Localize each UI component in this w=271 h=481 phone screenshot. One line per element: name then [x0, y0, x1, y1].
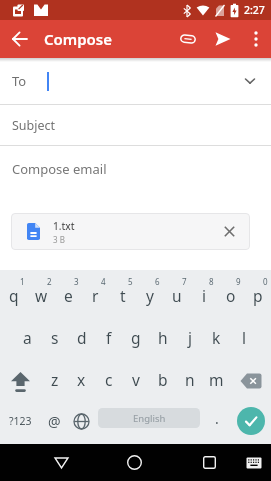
staticText: @: [48, 412, 61, 431]
button[interactable]: h: [149, 318, 176, 360]
staticText: l: [242, 327, 246, 348]
button[interactable]: x: [68, 360, 95, 402]
button[interactable]: 2: [28, 276, 55, 318]
staticText: j: [188, 327, 192, 348]
staticText: Compose email: [12, 160, 107, 178]
button[interactable]: l: [230, 318, 257, 360]
button[interactable]: [230, 360, 271, 402]
button[interactable]: v: [122, 360, 149, 402]
staticText: t: [120, 285, 126, 306]
button[interactable]: @: [41, 402, 68, 444]
button[interactable]: b: [149, 360, 176, 402]
staticText: h: [158, 327, 168, 348]
staticText: r: [92, 285, 99, 306]
button[interactable]: [237, 444, 271, 481]
staticText: To: [12, 72, 27, 90]
staticText: s: [51, 327, 59, 348]
button[interactable]: To: [0, 58, 271, 104]
button[interactable]: m: [203, 360, 230, 402]
staticText: 0: [263, 276, 268, 287]
button[interactable]: .: [203, 402, 230, 444]
staticText: y: [146, 285, 154, 306]
button[interactable]: 7: [163, 276, 190, 318]
staticText: a: [23, 327, 32, 348]
staticText: 7: [182, 276, 187, 287]
staticText: 1: [20, 276, 25, 287]
staticText: u: [172, 285, 182, 306]
button[interactable]: 9: [217, 276, 244, 318]
staticText: 3: [74, 276, 79, 287]
staticText: 8: [209, 276, 214, 287]
button[interactable]: [205, 20, 241, 58]
staticText: 5: [128, 276, 133, 287]
button[interactable]: [189, 444, 229, 481]
staticText: o: [226, 285, 236, 306]
staticText: Subject: [12, 117, 56, 134]
button[interactable]: [0, 360, 41, 402]
button[interactable]: 0: [244, 276, 271, 318]
button[interactable]: English: [95, 402, 203, 444]
button[interactable]: Subject: [0, 105, 271, 145]
staticText: p: [253, 285, 263, 306]
staticText: d: [77, 327, 87, 348]
staticText: 3 B: [53, 234, 65, 245]
button[interactable]: [68, 402, 95, 444]
button[interactable]: c: [95, 360, 122, 402]
button[interactable]: 1.txt: [11, 213, 250, 250]
staticText: .: [215, 409, 219, 428]
button[interactable]: 1: [0, 276, 28, 318]
button[interactable]: [171, 20, 205, 58]
button[interactable]: f: [95, 318, 122, 360]
button[interactable]: [114, 444, 154, 481]
button[interactable]: ?123: [0, 402, 41, 444]
staticText: 9: [236, 276, 241, 287]
staticText: 4: [101, 276, 106, 287]
button[interactable]: [230, 402, 271, 444]
button[interactable]: [214, 213, 244, 250]
staticText: q: [9, 285, 19, 306]
staticText: Compose: [44, 29, 113, 49]
staticText: m: [209, 369, 224, 390]
staticText: w: [35, 285, 48, 306]
staticText: g: [131, 327, 141, 348]
staticText: English: [133, 412, 166, 425]
button[interactable]: [241, 20, 271, 58]
button[interactable]: j: [176, 318, 203, 360]
button[interactable]: s: [41, 318, 68, 360]
button[interactable]: g: [122, 318, 149, 360]
staticText: 1.txt: [53, 219, 75, 233]
staticText: 2: [47, 276, 52, 287]
staticText: b: [158, 369, 168, 390]
staticText: 2:27: [244, 3, 265, 17]
button[interactable]: z: [41, 360, 68, 402]
staticText: ?123: [9, 414, 32, 428]
button[interactable]: k: [203, 318, 230, 360]
button[interactable]: Compose email: [0, 146, 271, 192]
button[interactable]: [0, 20, 40, 58]
staticText: 6: [155, 276, 160, 287]
staticText: x: [77, 369, 86, 390]
button[interactable]: 4: [82, 276, 109, 318]
staticText: z: [51, 369, 59, 390]
button[interactable]: 5: [109, 276, 136, 318]
button[interactable]: d: [68, 318, 95, 360]
staticText: i: [202, 285, 206, 306]
staticText: v: [132, 369, 140, 390]
staticText: c: [105, 369, 113, 390]
staticText: k: [212, 327, 221, 348]
button[interactable]: a: [14, 318, 41, 360]
button[interactable]: 8: [190, 276, 217, 318]
staticText: n: [185, 369, 195, 390]
staticText: e: [64, 285, 73, 306]
button[interactable]: [41, 444, 81, 481]
staticText: f: [106, 327, 112, 348]
button[interactable]: 6: [136, 276, 163, 318]
button[interactable]: n: [176, 360, 203, 402]
button[interactable]: 3: [55, 276, 82, 318]
